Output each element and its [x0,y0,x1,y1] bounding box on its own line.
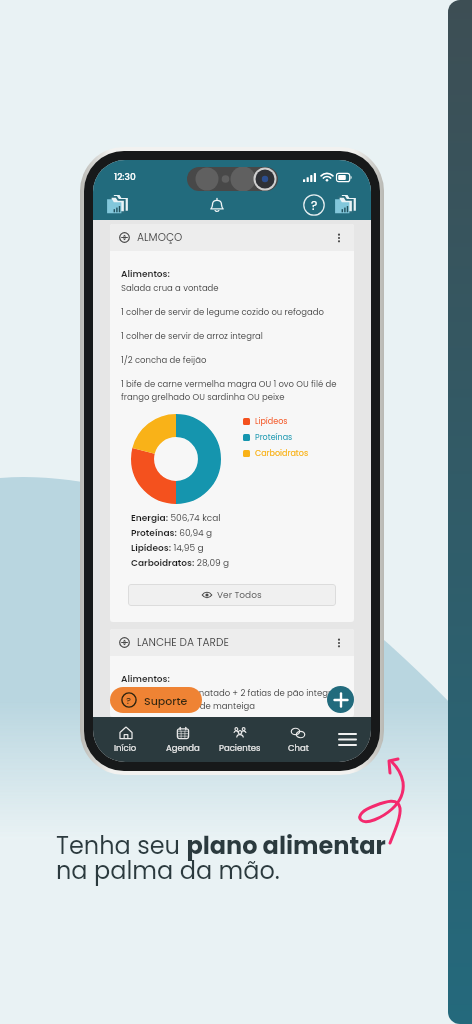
button[interactable]: LANCHE DA TARDE [110,629,354,656]
button[interactable]: Relatórios [105,192,131,218]
staticText: Energia: 506,74 kcal [131,512,221,525]
staticText: 1/2 concha de feijão [121,354,207,366]
staticText: Agenda [166,742,200,754]
staticText: Ver Todos [217,589,262,602]
staticText: 12:30 [114,171,136,184]
button[interactable]: Ajuda [303,194,325,216]
staticText: LANCHE DA TARDE [137,635,229,650]
staticText: Carboidratos [255,448,309,459]
staticText: Alimentos: [121,268,170,281]
button[interactable]: Menu [327,717,367,762]
staticText: Chat [288,742,309,754]
staticText: ? [311,197,318,214]
staticText: Suporte [144,693,188,708]
staticText: Tenha seu plano alimentar na palma da mã… [56,829,386,888]
button[interactable]: Notificações [206,194,228,216]
staticText: Lipídeos [255,416,288,427]
button[interactable]: Início [97,717,154,762]
staticText: Carboidratos: 28,09 g [131,557,230,570]
button[interactable]: Chat [269,717,327,762]
button[interactable]: ALMOÇO [110,224,354,251]
button[interactable]: Pacientes [211,717,269,762]
staticText: Alimentos: [121,673,170,686]
staticText: 1 copo de leite desnatado + 2 fatias de … [121,687,343,712]
button[interactable]: Ver Todos [128,584,336,606]
staticText: Início [114,742,137,754]
staticText: 1 colher de servir de legume cozido ou r… [121,306,324,318]
staticText: Pacientes [219,742,261,754]
staticText: Salada crua a vontade [121,282,219,294]
staticText: Proteínas: 60,94 g [131,527,213,540]
staticText: Lipídeos: 14,95 g [131,542,204,555]
button[interactable]: Adicionar refeição [327,686,354,713]
staticText: ALMOÇO [137,230,183,245]
button[interactable]: Agenda [154,717,211,762]
staticText: Proteínas [255,432,293,443]
button[interactable]: ? [110,687,202,713]
staticText: 1 bife de carne vermelha magra OU 1 ovo … [121,378,343,403]
staticText: 1 colher de servir de arroz integral [121,330,263,342]
button[interactable]: Arquivos [333,192,359,218]
staticText: ? [126,694,132,707]
